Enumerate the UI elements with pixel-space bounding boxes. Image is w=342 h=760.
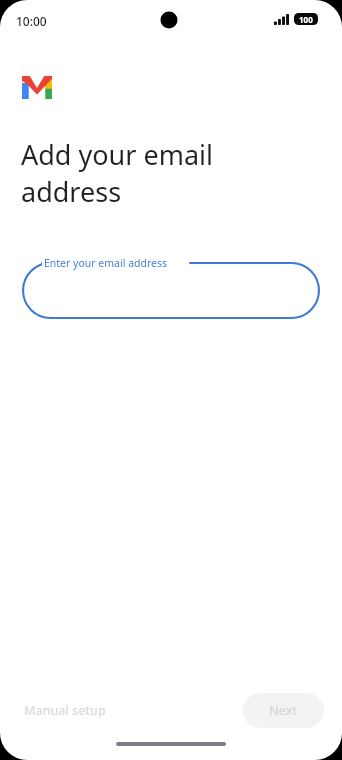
staticText: Manual setup bbox=[24, 702, 106, 719]
staticText: Add your email bbox=[21, 136, 213, 173]
button[interactable]: Next bbox=[243, 693, 324, 728]
button[interactable]: Enter your email address bbox=[22, 262, 320, 319]
staticText: 100 bbox=[299, 14, 313, 25]
staticText: 10:00 bbox=[16, 13, 47, 29]
staticText: Enter your email address bbox=[44, 256, 168, 270]
staticText: Next bbox=[269, 702, 298, 719]
button[interactable]: Manual setup bbox=[12, 693, 118, 728]
staticText: address bbox=[21, 173, 122, 210]
